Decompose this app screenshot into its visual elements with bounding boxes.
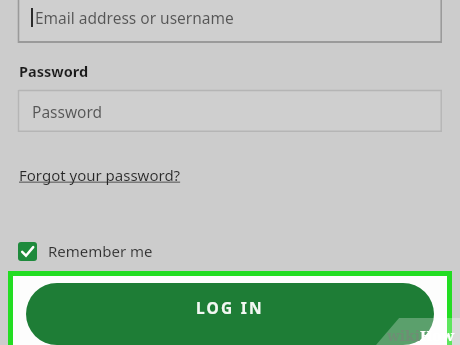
staticText: How (420, 325, 455, 345)
staticText: LOG IN (196, 297, 264, 318)
button[interactable]: LOG IN (26, 283, 434, 345)
button[interactable]: Forgot your password? (19, 163, 181, 187)
staticText: Password (19, 61, 89, 81)
button[interactable]: Email address or username (18, 0, 442, 43)
button[interactable]: Remember me (18, 241, 159, 261)
staticText: Password (32, 101, 103, 122)
staticText: Email address or username (35, 7, 234, 28)
staticText: Remember me (48, 241, 153, 261)
staticText: Forgot your password? (19, 165, 181, 185)
staticText: wiki (387, 325, 420, 345)
button[interactable]: Password (18, 90, 442, 132)
